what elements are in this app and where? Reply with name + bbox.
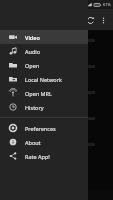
staticText: Open <box>25 62 40 69</box>
staticText: 61% <box>103 2 111 7</box>
button[interactable]: About <box>0 135 88 149</box>
button[interactable]: Preferences <box>0 121 88 135</box>
button[interactable]: Open <box>0 58 88 72</box>
button[interactable]: Audio <box>0 44 88 58</box>
button[interactable]: Rate App! <box>0 149 88 163</box>
staticText: Open MRL <box>25 90 52 97</box>
button[interactable]: Local Network <box>0 72 88 86</box>
button[interactable]: More options <box>97 14 109 26</box>
staticText: About <box>25 139 41 146</box>
staticText: Preferences <box>25 125 56 132</box>
staticText: Video <box>25 34 40 41</box>
staticText: Audio <box>25 48 41 55</box>
staticText: Local Network <box>25 76 62 83</box>
button[interactable]: Refresh <box>83 13 97 27</box>
button[interactable]: Video <box>0 30 88 44</box>
button[interactable]: History <box>0 100 88 114</box>
button[interactable]: Open MRL <box>0 86 88 100</box>
staticText: Rate App! <box>25 153 50 160</box>
staticText: History <box>25 104 44 111</box>
